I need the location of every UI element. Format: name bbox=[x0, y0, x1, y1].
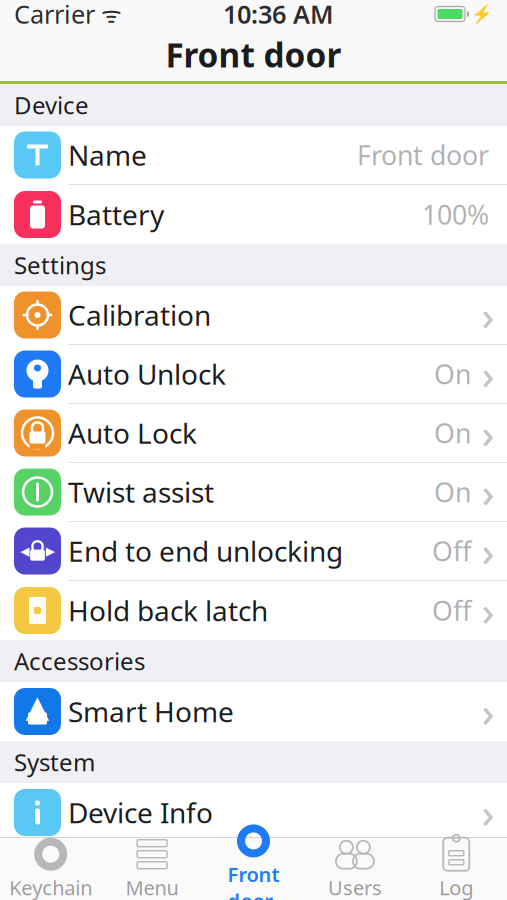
staticText: Keychain bbox=[9, 874, 92, 900]
staticText: Hold back latch bbox=[68, 592, 268, 629]
staticText: › bbox=[481, 406, 494, 459]
staticText: End to end unlocking bbox=[68, 532, 343, 570]
staticText: › bbox=[481, 288, 494, 341]
staticText: On bbox=[434, 474, 471, 510]
button[interactable]: Battery bbox=[0, 185, 507, 244]
button[interactable]: Calibration bbox=[0, 286, 507, 345]
staticText: ᯤ bbox=[95, 0, 122, 29]
staticText: Front door bbox=[165, 32, 341, 77]
staticText: Log bbox=[439, 874, 473, 900]
staticText: 100% bbox=[422, 197, 489, 232]
staticText: Menu bbox=[126, 874, 179, 900]
staticText: Calibration bbox=[68, 296, 211, 334]
button[interactable]: Device Info bbox=[0, 783, 507, 842]
staticText: Name bbox=[68, 136, 147, 174]
staticText: ⚡ bbox=[471, 4, 493, 24]
staticText: On bbox=[434, 415, 471, 451]
staticText: Auto Unlock bbox=[68, 355, 226, 393]
staticText: ◀ bbox=[20, 544, 29, 558]
staticText: Auto Lock bbox=[68, 414, 197, 452]
staticText: Device Info bbox=[68, 794, 213, 831]
button[interactable]: Hold back latch bbox=[0, 581, 507, 640]
staticText: Front door bbox=[357, 137, 489, 173]
button[interactable]: ▲ bbox=[0, 682, 507, 741]
button[interactable]: Users bbox=[304, 838, 406, 900]
staticText: Settings bbox=[14, 249, 106, 281]
staticText: Front door bbox=[227, 861, 279, 900]
staticText: On bbox=[434, 356, 471, 392]
staticText: ▲ bbox=[25, 689, 49, 724]
staticText: Accessories bbox=[14, 645, 145, 677]
button[interactable]: Name bbox=[0, 126, 507, 185]
staticText: › bbox=[481, 465, 494, 518]
staticText: Twist assist bbox=[68, 473, 214, 511]
staticText: › bbox=[481, 584, 494, 637]
staticText: Battery bbox=[68, 196, 164, 233]
staticText: Users bbox=[328, 874, 382, 900]
button[interactable]: Front door bbox=[203, 838, 304, 900]
button[interactable]: Log bbox=[406, 838, 507, 900]
button[interactable]: Auto Unlock bbox=[0, 345, 507, 404]
button[interactable]: Twist assist bbox=[0, 463, 507, 522]
button[interactable]: ◀ bbox=[0, 522, 507, 581]
staticText: ▶ bbox=[46, 544, 55, 558]
button[interactable]: Keychain bbox=[0, 838, 101, 900]
staticText: System bbox=[14, 746, 95, 778]
staticText: Device bbox=[14, 89, 89, 121]
staticText: › bbox=[481, 685, 494, 738]
button[interactable]: Auto Lock bbox=[0, 404, 507, 463]
staticText: › bbox=[481, 524, 494, 577]
staticText: › bbox=[481, 786, 494, 839]
staticText: › bbox=[481, 347, 494, 400]
staticText: Off bbox=[432, 533, 471, 569]
staticText: Smart Home bbox=[68, 693, 234, 730]
staticText: Carrier bbox=[14, 0, 95, 31]
button[interactable]: Menu bbox=[101, 838, 203, 900]
staticText: Off bbox=[432, 593, 471, 628]
staticText: 10:36 AM bbox=[223, 0, 334, 31]
